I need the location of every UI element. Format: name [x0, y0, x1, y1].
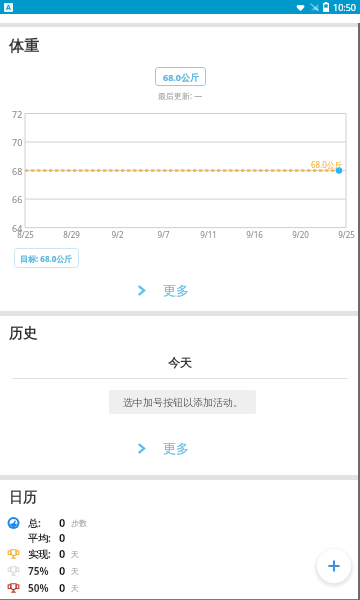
staticText: 日历: [9, 489, 37, 507]
staticText: 0: [59, 515, 66, 530]
staticText: 68: [12, 165, 23, 177]
staticText: 目标: 68.0公斤: [20, 253, 73, 264]
staticText: 历史: [9, 325, 37, 343]
staticText: 0: [59, 530, 66, 545]
staticText: 天: [71, 566, 79, 576]
staticText: 66: [12, 193, 23, 205]
staticText: 70: [12, 136, 23, 148]
staticText: 9/20: [292, 229, 309, 240]
button[interactable]: 68.0公斤: [155, 67, 206, 86]
staticText: 9/16: [246, 229, 263, 240]
staticText: 0: [59, 546, 66, 561]
staticText: 0: [59, 563, 66, 578]
staticText: 步数: [71, 518, 87, 528]
staticText: 天: [71, 549, 79, 559]
staticText: 9/7: [157, 229, 170, 240]
staticText: 68.0公斤: [311, 159, 343, 170]
staticText: 天: [71, 583, 79, 593]
staticText: 平均:: [28, 531, 51, 545]
staticText: 9/11: [200, 229, 217, 240]
button[interactable]: 更多: [105, 277, 255, 303]
staticText: 选中加号按钮以添加活动。: [123, 396, 243, 409]
button[interactable]: 更多: [105, 435, 255, 461]
button[interactable]: Add: [317, 549, 351, 583]
staticText: 总:: [28, 516, 41, 530]
staticText: 50%: [28, 581, 49, 595]
staticText: A: [6, 3, 11, 12]
staticText: 体重: [9, 37, 39, 56]
button[interactable]: 目标: 68.0公斤: [14, 248, 79, 268]
staticText: 10:50: [333, 1, 357, 13]
staticText: 68.0公斤: [163, 71, 199, 83]
staticText: 8/25: [17, 229, 34, 240]
staticText: 更多: [163, 282, 189, 298]
staticText: 0: [59, 580, 66, 595]
staticText: 9/2: [111, 229, 124, 240]
staticText: 实现:: [28, 547, 51, 561]
staticText: 最后更新: —: [158, 90, 203, 101]
staticText: 72: [12, 108, 23, 120]
staticText: 今天: [168, 355, 192, 370]
staticText: 9/25: [338, 229, 355, 240]
staticText: 64: [12, 222, 23, 234]
staticText: 更多: [163, 440, 189, 456]
staticText: 75%: [28, 564, 49, 578]
staticText: 8/29: [63, 229, 80, 240]
